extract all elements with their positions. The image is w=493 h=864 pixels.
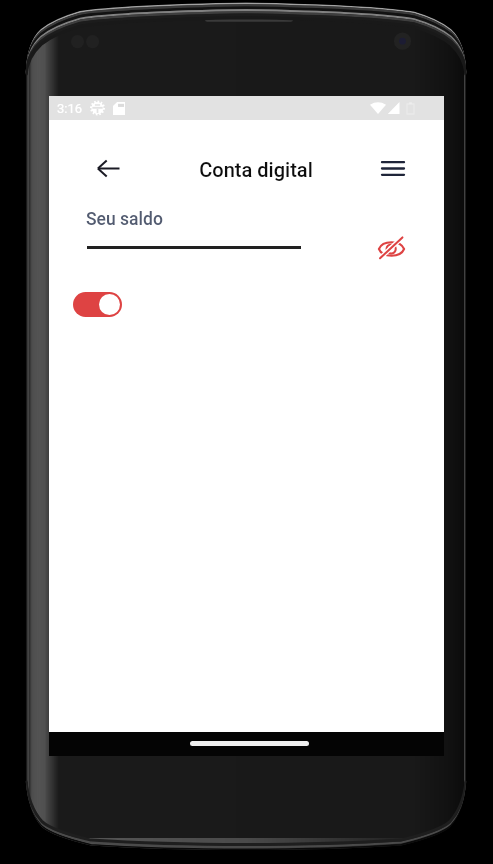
button[interactable]: Toggle balance visibility: [73, 292, 122, 317]
staticText: Conta digital: [186, 158, 326, 181]
staticText: 3:16: [57, 101, 83, 116]
button[interactable]: Hide balance: [371, 229, 411, 269]
button[interactable]: Back: [84, 144, 132, 192]
staticText: Seu saldo: [86, 209, 163, 230]
button[interactable]: Menu: [369, 144, 417, 192]
